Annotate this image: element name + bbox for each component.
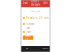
staticText: subtitle — [26, 27, 30, 29]
staticText: Back — [23, 1, 28, 5]
button[interactable]: Back — [23, 1, 28, 5]
staticText: Edit — [43, 1, 48, 5]
button[interactable]: Edit — [43, 1, 48, 5]
button[interactable]: Order — [23, 36, 33, 40]
staticText: Ready in 25 min — [26, 16, 49, 20]
staticText: Delivery details — [30, 10, 40, 12]
staticText: Format option — [26, 23, 35, 25]
staticText: company — [42, 48, 49, 49]
staticText: Order Details — [31, 0, 40, 7]
staticText: Add item — [26, 31, 31, 33]
staticText: small note — [27, 41, 33, 43]
staticText: Order — [25, 34, 31, 41]
